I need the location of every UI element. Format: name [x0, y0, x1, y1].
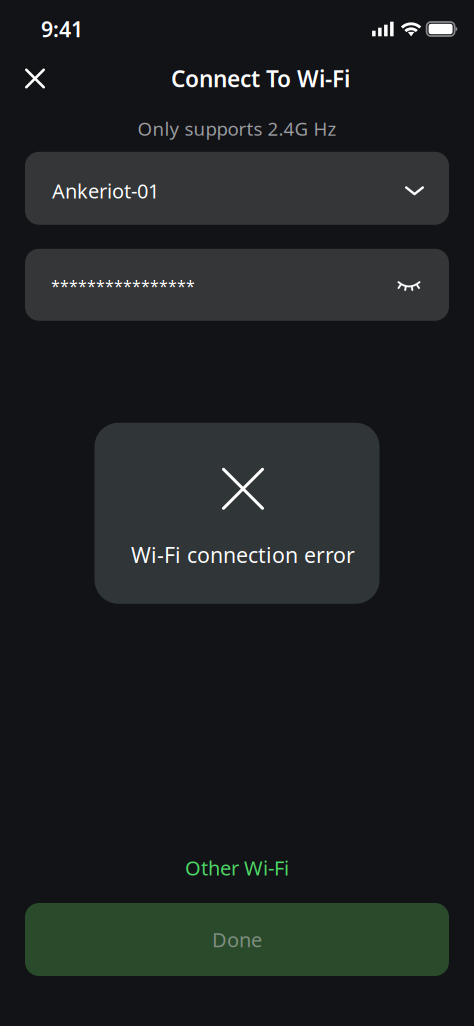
button[interactable]: Other Wi-Fi: [167, 848, 307, 887]
staticText: ****************: [51, 275, 195, 296]
button[interactable]: Done: [25, 903, 449, 976]
staticText: Ankeriot-01: [52, 177, 159, 204]
button[interactable]: Close: [13, 56, 57, 100]
button[interactable]: Ankeriot-01: [25, 152, 449, 225]
staticText: Connect To Wi-Fi: [171, 63, 350, 93]
staticText: Only supports 2.4G Hz: [137, 116, 336, 141]
staticText: 9:41: [41, 15, 83, 43]
button[interactable]: Show password: [394, 274, 424, 298]
staticText: Other Wi-Fi: [185, 854, 289, 881]
staticText: Done: [212, 926, 262, 953]
staticText: Wi-Fi connection error: [131, 540, 355, 569]
